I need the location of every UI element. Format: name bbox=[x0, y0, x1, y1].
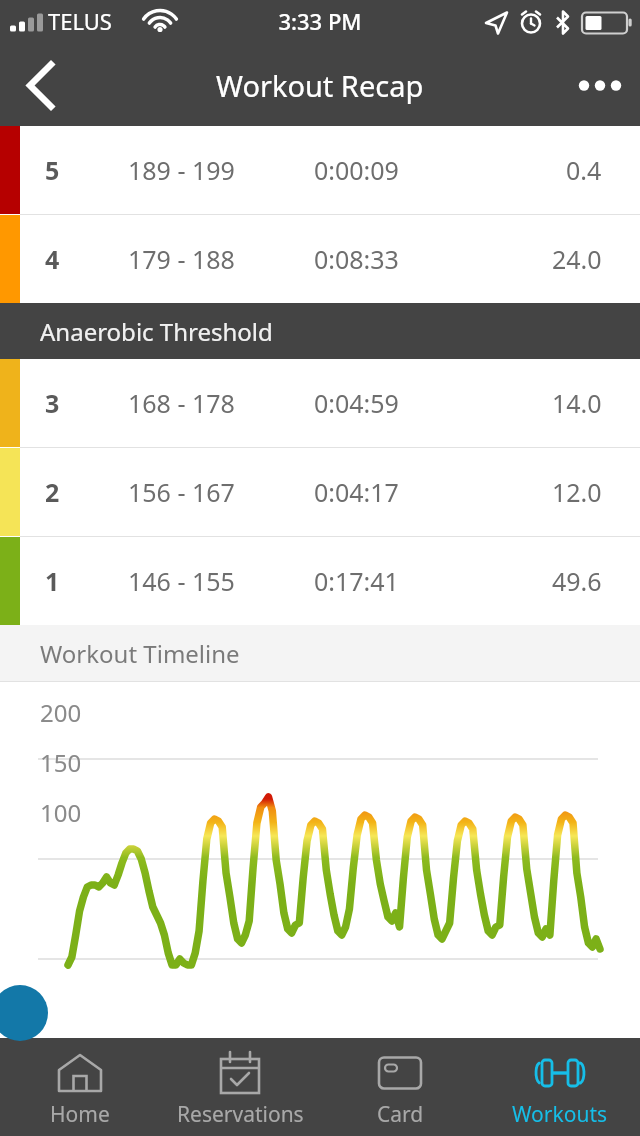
button[interactable]: 2 bbox=[0, 448, 640, 536]
button[interactable]: Reservations bbox=[160, 1038, 320, 1136]
button[interactable]: 1 bbox=[0, 537, 640, 625]
staticText: Anaerobic Threshold bbox=[40, 315, 273, 348]
staticText: TELUS bbox=[48, 6, 112, 36]
staticText: 5 bbox=[45, 153, 60, 187]
staticText: Card bbox=[377, 1100, 424, 1129]
staticText: 2 bbox=[45, 475, 60, 509]
staticText: 12.0 bbox=[552, 475, 602, 509]
button[interactable]: 5 bbox=[0, 126, 640, 214]
staticText: Workout Recap bbox=[216, 66, 424, 105]
staticText: 100 bbox=[40, 796, 82, 829]
button[interactable]: Card bbox=[320, 1038, 480, 1136]
staticText: Reservations bbox=[177, 1100, 304, 1129]
staticText: 0.4 bbox=[566, 153, 602, 187]
staticText: 1 bbox=[45, 564, 60, 598]
staticText: 3 bbox=[45, 386, 60, 420]
staticText: Workout Timeline bbox=[40, 637, 240, 670]
staticText: 189 - 199 bbox=[128, 153, 235, 187]
button[interactable]: More options bbox=[560, 45, 640, 126]
button[interactable]: 3 bbox=[0, 359, 640, 447]
button[interactable]: Workouts bbox=[480, 1038, 640, 1136]
staticText: 0:04:59 bbox=[314, 386, 399, 420]
staticText: 0:08:33 bbox=[314, 242, 399, 276]
staticText: 168 - 178 bbox=[128, 386, 235, 420]
staticText: 146 - 155 bbox=[128, 564, 235, 598]
button[interactable]: Add workout bbox=[0, 985, 48, 1041]
staticText: 0:04:17 bbox=[314, 475, 399, 509]
staticText: 49.6 bbox=[552, 564, 602, 598]
button[interactable]: Back bbox=[0, 45, 78, 126]
staticText: 156 - 167 bbox=[128, 475, 235, 509]
button[interactable]: 4 bbox=[0, 215, 640, 303]
staticText: Home bbox=[50, 1100, 110, 1129]
staticText: 150 bbox=[40, 746, 82, 779]
staticText: 4 bbox=[45, 242, 60, 276]
staticText: 0:17:41 bbox=[314, 564, 399, 598]
button[interactable]: Home bbox=[0, 1038, 160, 1136]
staticText: 200 bbox=[40, 696, 82, 729]
staticText: Workouts bbox=[512, 1100, 608, 1129]
staticText: 24.0 bbox=[552, 242, 602, 276]
staticText: 3:33 PM bbox=[0, 6, 640, 36]
staticText: 0:00:09 bbox=[314, 153, 399, 187]
staticText: 179 - 188 bbox=[128, 242, 235, 276]
staticText: 14.0 bbox=[552, 386, 602, 420]
